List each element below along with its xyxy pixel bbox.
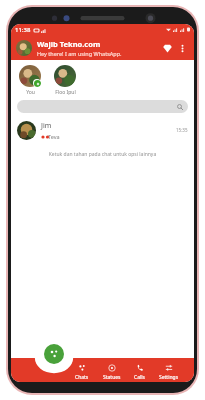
- staticText: Wajib Tekno.com: [37, 39, 101, 49]
- button[interactable]: Statues: [101, 363, 123, 382]
- button[interactable]: Jim: [11, 119, 194, 141]
- button[interactable]: Calls: [132, 363, 147, 382]
- staticText: Floo Ipul: [55, 89, 76, 96]
- button[interactable]: Search: [17, 100, 188, 113]
- staticText: Teva: [48, 133, 60, 140]
- staticText: 15:35: [176, 127, 188, 133]
- button[interactable]: New chat: [44, 344, 64, 364]
- button[interactable]: You: [17, 65, 43, 96]
- staticText: Jim: [41, 121, 52, 131]
- staticText: Ketuk dan tahan pada chat untuk opsi lai…: [11, 151, 194, 158]
- button[interactable]: Profile photo: [16, 40, 32, 56]
- button[interactable]: More options: [175, 41, 189, 55]
- button[interactable]: Floo Ipul: [52, 65, 78, 96]
- staticText: You: [26, 89, 35, 96]
- staticText: Statues: [103, 374, 121, 381]
- staticText: 11:38: [15, 26, 31, 34]
- button[interactable]: Status: [159, 40, 175, 56]
- button[interactable]: Settings: [157, 363, 181, 382]
- staticText: Hey there! I am using WhatsApp.: [37, 50, 122, 57]
- staticText: Chats: [75, 374, 89, 381]
- staticText: Calls: [134, 374, 145, 381]
- staticText: Settings: [159, 374, 179, 381]
- button[interactable]: Chats: [73, 363, 91, 382]
